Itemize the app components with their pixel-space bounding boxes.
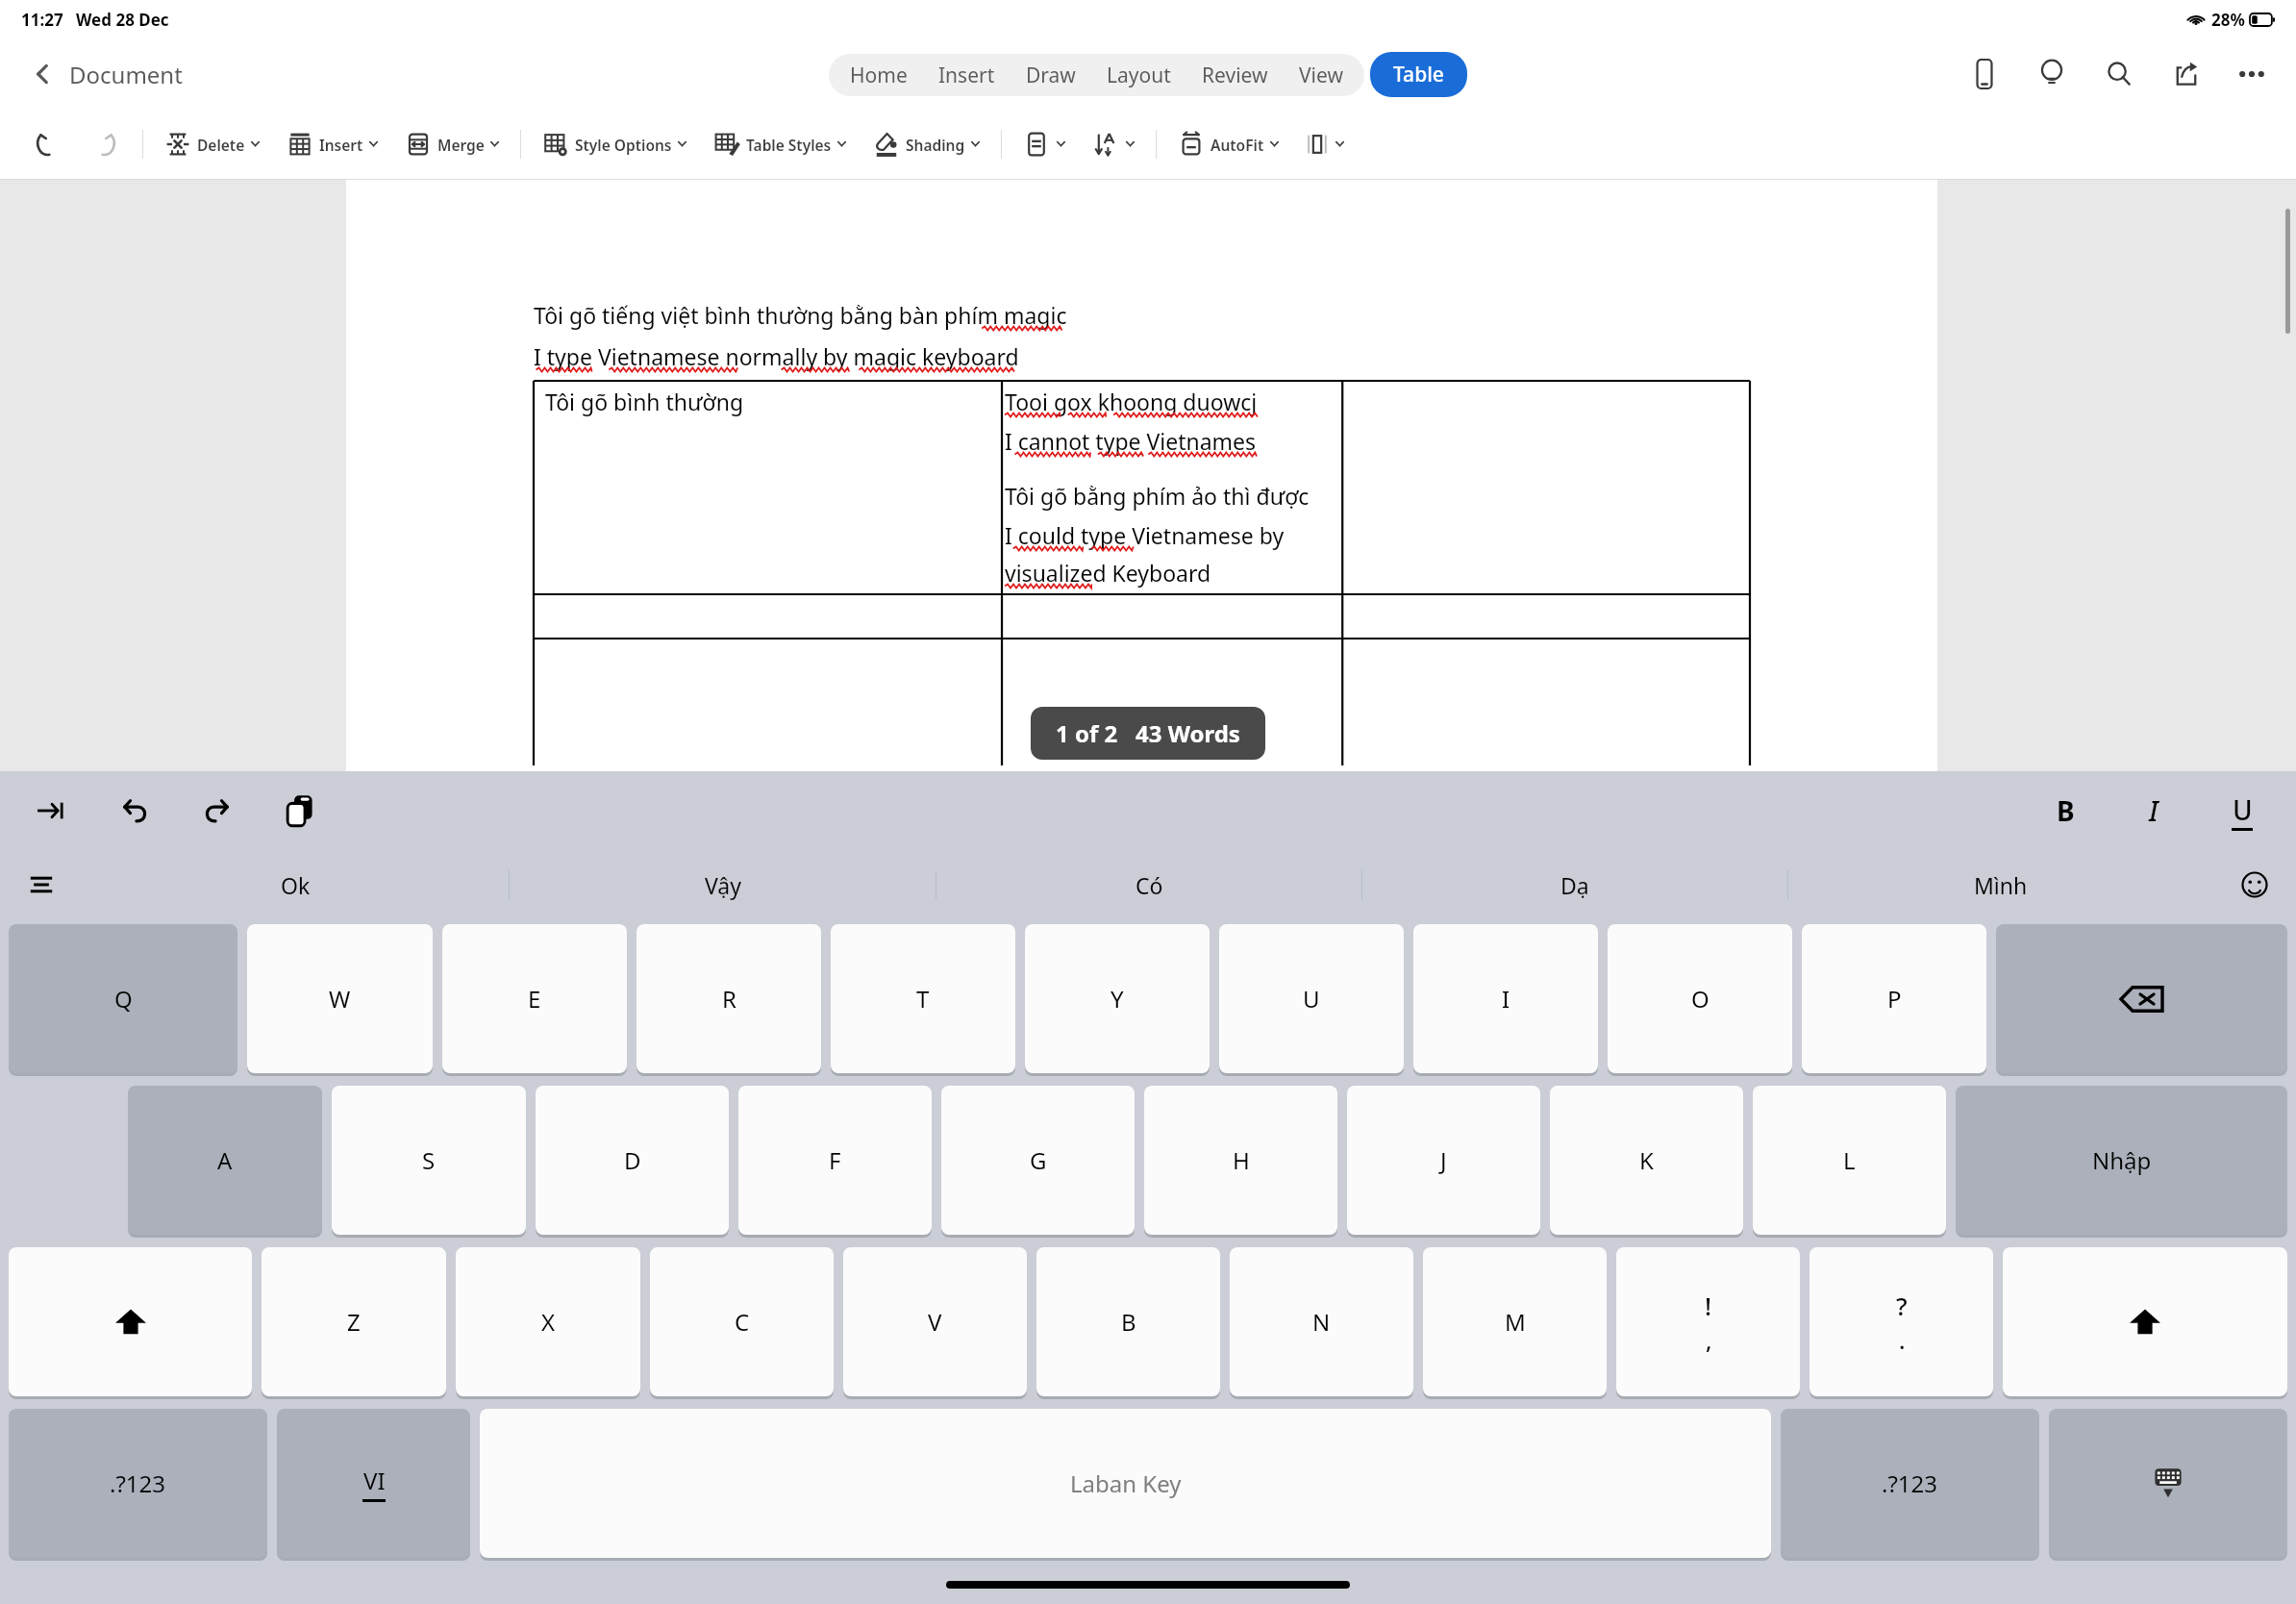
button[interactable]: O — [1608, 924, 1792, 1073]
button[interactable]: X — [456, 1247, 640, 1396]
staticText: Vậy — [705, 870, 741, 900]
button[interactable]: Share — [2161, 49, 2211, 99]
staticText: Shading — [906, 135, 965, 155]
button[interactable]: S — [332, 1086, 526, 1235]
button[interactable]: Search — [2094, 49, 2144, 99]
button[interactable]: ? — [1809, 1247, 1993, 1396]
button[interactable]: W — [247, 924, 433, 1073]
button[interactable]: .?123 — [1781, 1409, 2039, 1558]
staticText: J — [1440, 1144, 1447, 1176]
staticText: F — [829, 1144, 841, 1176]
button[interactable]: Có — [936, 850, 1361, 919]
button[interactable]: Insert — [279, 110, 386, 179]
button[interactable]: Document — [69, 59, 183, 90]
button[interactable]: 1 of 2 — [1031, 707, 1265, 760]
button[interactable]: Tab — [23, 782, 81, 840]
button[interactable]: Vietnamese input — [277, 1409, 470, 1558]
button[interactable]: J — [1347, 1086, 1540, 1235]
button[interactable]: Undo — [106, 782, 163, 840]
button[interactable]: Style Options — [535, 110, 694, 179]
button[interactable]: Toolbar action — [1085, 110, 1142, 179]
button[interactable]: Table — [1370, 52, 1467, 97]
button[interactable]: I — [1413, 924, 1598, 1073]
button[interactable]: More options — [2227, 49, 2277, 99]
button[interactable]: Z — [262, 1247, 446, 1396]
button[interactable]: L — [1753, 1086, 1946, 1235]
button[interactable]: Laban Key — [480, 1409, 1771, 1558]
button[interactable]: Nhập — [1956, 1086, 2287, 1235]
button[interactable]: Shift — [9, 1247, 252, 1396]
button[interactable]: U — [1219, 924, 1404, 1073]
staticText: M — [1505, 1306, 1526, 1338]
button[interactable]: Backspace — [1996, 924, 2287, 1073]
button[interactable]: Tell me — [2027, 49, 2077, 99]
staticText: , — [1706, 1324, 1712, 1356]
button[interactable]: R — [636, 924, 821, 1073]
staticText: Nhập — [2092, 1144, 2152, 1176]
button[interactable]: E — [442, 924, 627, 1073]
button[interactable]: M — [1423, 1247, 1607, 1396]
staticText: Có — [1136, 870, 1163, 900]
button[interactable]: Redo — [83, 122, 127, 166]
button[interactable]: Undo — [25, 122, 69, 166]
button[interactable]: B — [1036, 1247, 1220, 1396]
button[interactable]: Ok — [83, 850, 509, 919]
button[interactable]: Insert — [923, 54, 1011, 96]
button[interactable]: D — [536, 1086, 729, 1235]
button[interactable]: Phone layout — [1959, 49, 2009, 99]
button[interactable]: Review — [1186, 54, 1284, 96]
button[interactable]: Table Styles — [706, 110, 854, 179]
staticText: Y — [1111, 983, 1124, 1015]
button[interactable]: ! — [1616, 1247, 1800, 1396]
button[interactable]: T — [831, 924, 1015, 1073]
button[interactable]: K — [1550, 1086, 1743, 1235]
staticText: S — [422, 1144, 436, 1176]
staticText: I could type Vietnamese by — [1005, 520, 1285, 550]
button[interactable]: V — [843, 1247, 1027, 1396]
button[interactable]: Mình — [1788, 850, 2213, 919]
staticText: E — [528, 983, 541, 1015]
button[interactable]: Toolbar action — [1298, 110, 1352, 179]
button[interactable]: A — [128, 1086, 322, 1235]
staticText: 11:27 — [21, 9, 63, 31]
button[interactable]: P — [1802, 924, 1986, 1073]
button[interactable]: Back — [19, 53, 62, 95]
button[interactable]: Home — [835, 54, 923, 96]
button[interactable]: Delete — [157, 110, 267, 179]
button[interactable]: G — [941, 1086, 1135, 1235]
button[interactable]: Paste — [271, 782, 329, 840]
staticText: Wed 28 Dec — [76, 9, 169, 31]
button[interactable]: Shading — [865, 110, 987, 179]
button[interactable]: Keyboard menu — [0, 850, 83, 919]
staticText: A — [217, 1144, 233, 1176]
button[interactable]: U — [2211, 780, 2273, 841]
staticText: I type Vietnamese normally by magic keyb… — [534, 341, 1019, 371]
button[interactable]: AutoFit — [1170, 110, 1286, 179]
staticText: Table — [1393, 61, 1444, 88]
staticText: Tôi gõ bình thường — [545, 387, 744, 416]
button[interactable]: Y — [1025, 924, 1210, 1073]
button[interactable]: Layout — [1091, 54, 1186, 96]
button[interactable]: Q — [9, 924, 237, 1073]
button[interactable]: H — [1144, 1086, 1337, 1235]
button[interactable]: Vậy — [510, 850, 936, 919]
button[interactable]: Toolbar action — [1015, 110, 1073, 179]
button[interactable]: N — [1230, 1247, 1413, 1396]
button[interactable]: B — [2034, 780, 2096, 841]
button[interactable]: I — [2123, 780, 2184, 841]
button[interactable]: Emoji — [2213, 850, 2296, 919]
button[interactable]: Merge — [397, 110, 507, 179]
button[interactable]: Dạ — [1362, 850, 1787, 919]
button[interactable]: Shift — [2003, 1247, 2287, 1396]
button[interactable]: Hide keyboard — [2049, 1409, 2287, 1558]
button[interactable]: View — [1284, 54, 1359, 96]
staticText: I — [2149, 792, 2159, 829]
button[interactable]: .?123 — [9, 1409, 267, 1558]
button[interactable]: Redo — [188, 782, 246, 840]
button[interactable]: Draw — [1011, 54, 1091, 96]
button[interactable]: C — [650, 1247, 834, 1396]
staticText: O — [1691, 983, 1710, 1015]
button[interactable]: F — [738, 1086, 932, 1235]
staticText: ? — [1896, 1289, 1908, 1322]
staticText: AutoFit — [1210, 135, 1264, 155]
